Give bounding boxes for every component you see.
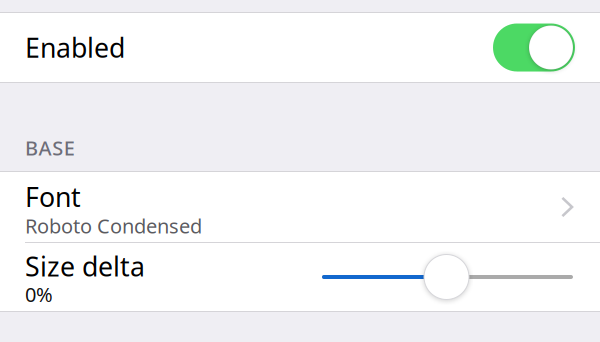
button[interactable]: Enabled [493, 23, 575, 71]
button[interactable]: Enabled [0, 13, 600, 82]
staticText: Size delta [25, 248, 145, 284]
staticText: BASE [25, 134, 75, 161]
staticText: Enabled [25, 30, 125, 65]
button[interactable]: Font [0, 172, 600, 242]
staticText: 0% [25, 281, 53, 307]
button[interactable]: Size delta [322, 253, 573, 301]
staticText: Roboto Condensed [25, 212, 202, 239]
staticText: Font [25, 179, 81, 214]
